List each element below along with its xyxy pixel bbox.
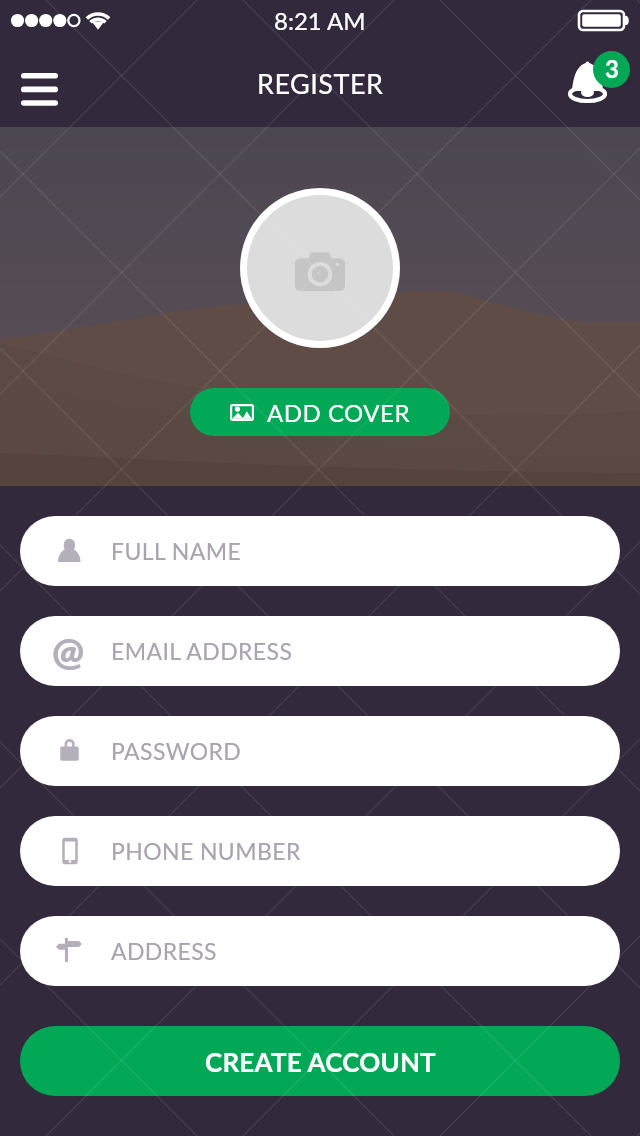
staticText: PASSWORD	[111, 737, 242, 765]
staticText: EMAIL ADDRESS	[111, 637, 293, 665]
staticText: PHONE NUMBER	[111, 837, 301, 865]
staticText: REGISTER	[257, 67, 384, 99]
button[interactable]: Open navigation menu	[12, 66, 67, 112]
staticText: 3	[605, 54, 619, 83]
button[interactable]: CREATE ACCOUNT	[20, 1026, 620, 1096]
staticText: ADDRESS	[111, 937, 217, 965]
button[interactable]: FULL NAME	[20, 516, 620, 586]
button[interactable]: Add profile photo	[247, 195, 393, 341]
staticText: FULL NAME	[111, 537, 242, 565]
staticText: 8:21 AM	[274, 6, 366, 35]
staticText: ADD COVER	[267, 398, 410, 427]
button[interactable]: PHONE NUMBER	[20, 816, 620, 886]
staticText: @	[52, 627, 85, 673]
staticText: CREATE ACCOUNT	[205, 1046, 436, 1077]
button[interactable]: ADD COVER	[190, 388, 450, 436]
button[interactable]: PASSWORD	[20, 716, 620, 786]
button[interactable]: @	[20, 616, 620, 686]
button[interactable]: ADDRESS	[20, 916, 620, 986]
button[interactable]: Notifications	[566, 47, 636, 107]
